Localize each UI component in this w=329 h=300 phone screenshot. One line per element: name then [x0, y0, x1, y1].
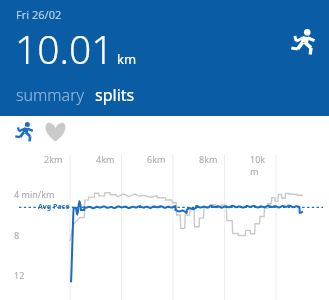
staticText: 6km — [147, 153, 169, 165]
button[interactable]: summary — [16, 84, 84, 106]
button[interactable]: Pace — [13, 120, 36, 143]
staticText: km — [117, 50, 137, 68]
staticText: 8km — [199, 153, 221, 165]
staticText: Avg Pace — [38, 202, 70, 212]
staticText: 4km — [96, 153, 118, 165]
staticText: 4 min/km — [14, 188, 55, 200]
button[interactable]: splits — [95, 84, 135, 106]
staticText: 12 — [14, 269, 25, 281]
staticText: splits — [95, 84, 135, 106]
staticText: 8 — [14, 229, 20, 241]
button[interactable]: Heart rate — [44, 120, 67, 143]
staticText: 10km — [250, 153, 272, 177]
button[interactable]: Running activity — [289, 27, 318, 56]
staticText: 2km — [44, 153, 66, 165]
staticText: summary — [16, 84, 84, 106]
staticText: Fri 26/02 — [16, 7, 62, 22]
staticText: 10.01 — [15, 22, 114, 75]
